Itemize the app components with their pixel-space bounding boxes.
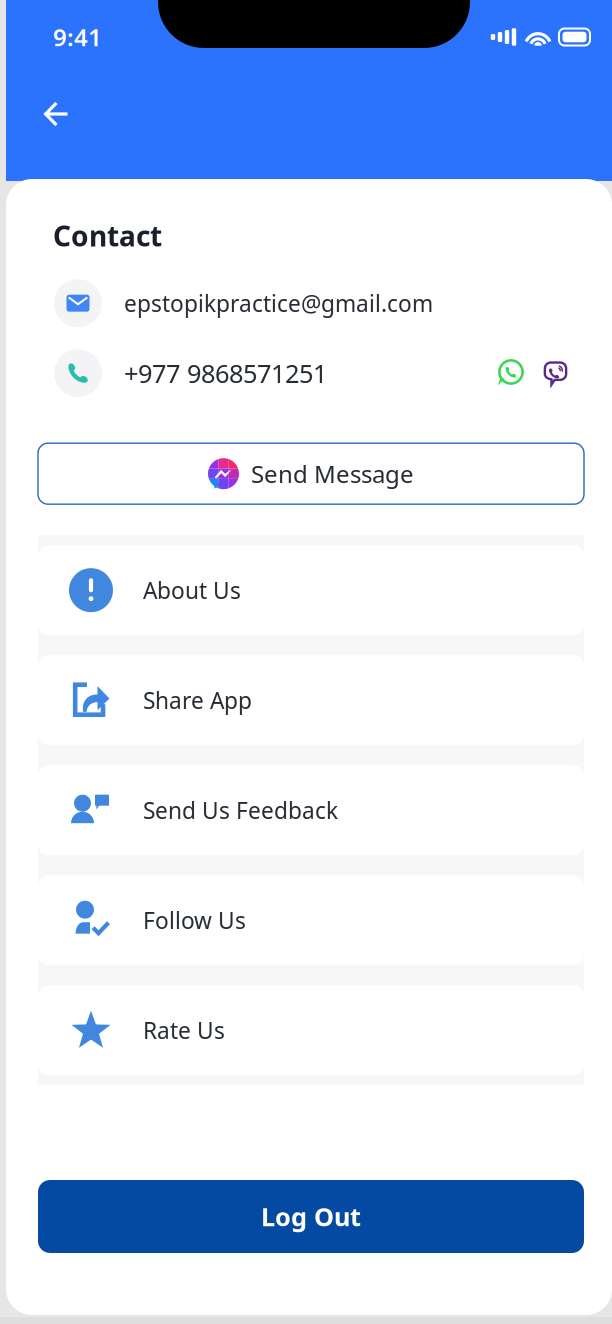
- staticText: Send Message: [251, 458, 414, 490]
- button[interactable]: Back: [29, 86, 84, 142]
- staticText: 9:41: [53, 21, 102, 53]
- button[interactable]: About Us: [38, 535, 584, 645]
- button[interactable]: Share App: [38, 645, 584, 755]
- staticText: Send Us Feedback: [143, 795, 338, 825]
- button[interactable]: WhatsApp: [496, 360, 523, 387]
- button[interactable]: Log Out: [38, 1180, 584, 1253]
- staticText: Follow Us: [143, 905, 246, 935]
- button[interactable]: Viber: [542, 360, 569, 387]
- button[interactable]: Follow Us: [38, 865, 584, 975]
- staticText: Rate Us: [143, 1015, 225, 1045]
- staticText: Contact: [53, 217, 162, 254]
- button[interactable]: Send Us Feedback: [38, 755, 584, 865]
- staticText: Log Out: [261, 1200, 361, 1233]
- staticText: About Us: [143, 575, 241, 605]
- button[interactable]: Send Message: [38, 443, 584, 504]
- staticText: epstopikpractice@gmail.com: [124, 288, 433, 318]
- button[interactable]: Rate Us: [38, 975, 584, 1085]
- staticText: +977 9868571251: [124, 356, 327, 390]
- staticText: Share App: [143, 685, 252, 715]
